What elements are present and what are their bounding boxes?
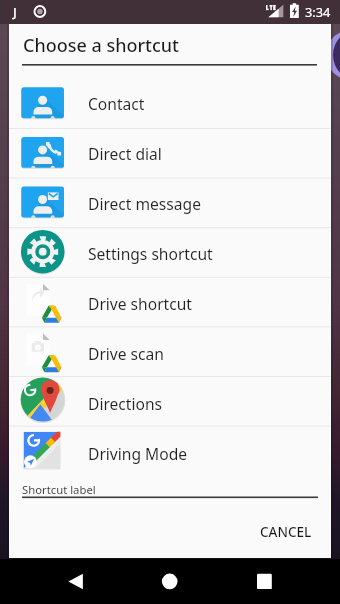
button[interactable]: Drive scan [0, 328, 340, 378]
staticText: Driving Mode [88, 443, 188, 464]
staticText: Directions [88, 393, 163, 414]
staticText: Choose a shortcut [23, 33, 180, 58]
button[interactable]: Contact [0, 78, 340, 128]
staticText: J [13, 3, 17, 21]
staticText: Direct message [88, 193, 201, 214]
button[interactable]: Home [148, 565, 192, 604]
staticText: Settings shortcut [88, 243, 213, 264]
staticText: CANCEL [260, 523, 312, 541]
button[interactable]: Drive shortcut [0, 278, 340, 328]
staticText: Shortcut label [22, 482, 96, 497]
staticText: Drive scan [88, 343, 164, 364]
button[interactable]: CANCEL [246, 515, 326, 549]
staticText: Direct dial [88, 143, 162, 164]
button[interactable]: Settings shortcut [0, 228, 340, 278]
button[interactable]: Driving Mode [0, 428, 340, 478]
button[interactable]: Directions [0, 378, 340, 428]
staticText: Contact [88, 93, 145, 114]
button[interactable]: Direct message [0, 178, 340, 228]
button[interactable]: Direct dial [0, 128, 340, 178]
staticText: Drive shortcut [88, 293, 192, 314]
staticText: 3:34 [305, 3, 331, 20]
button[interactable]: Back [53, 565, 97, 604]
button[interactable]: Recent apps [242, 565, 286, 604]
